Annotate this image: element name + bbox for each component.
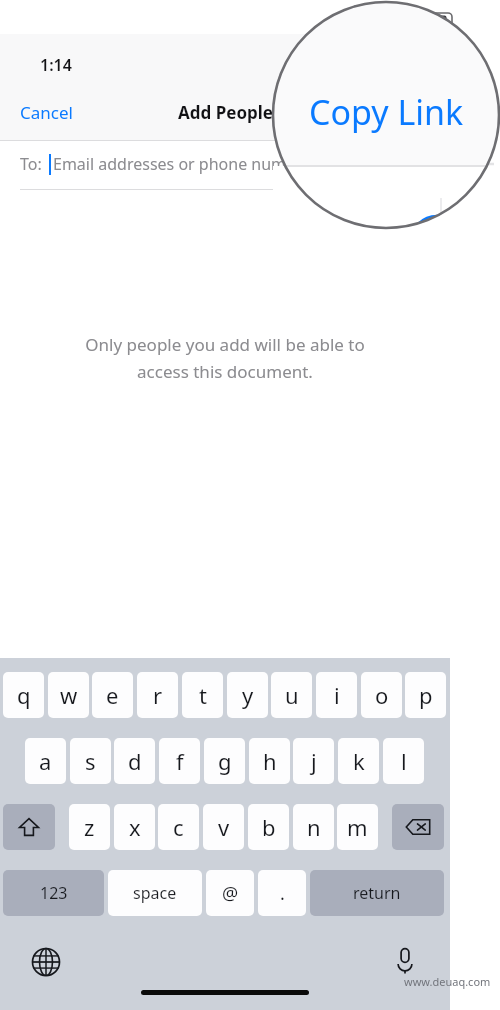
button[interactable]: v <box>203 804 244 850</box>
button[interactable]: e <box>92 672 133 718</box>
button[interactable]: c <box>158 804 199 850</box>
button[interactable]: s <box>70 738 111 784</box>
button[interactable]: f <box>159 738 200 784</box>
button[interactable]: x <box>114 804 155 850</box>
other: Change keyboard <box>31 947 61 977</box>
staticText: g <box>218 746 232 776</box>
staticText: www.deuaq.com <box>404 974 491 989</box>
staticText: . <box>280 881 285 906</box>
button[interactable]: a <box>25 738 66 784</box>
button[interactable]: r <box>137 672 178 718</box>
staticText: Copy Link <box>356 101 434 124</box>
staticText: r <box>153 680 163 710</box>
staticText: return <box>353 882 401 904</box>
staticText: d <box>128 746 142 776</box>
button[interactable]: h <box>249 738 290 784</box>
staticText: c <box>173 812 184 842</box>
staticText: n <box>307 812 321 842</box>
button[interactable]: u <box>271 672 312 718</box>
staticText: Only people you add will be able to acce… <box>0 333 450 383</box>
button[interactable]: o <box>361 672 402 718</box>
other: Dictate <box>390 945 420 975</box>
button[interactable]: Shift <box>3 804 55 850</box>
button[interactable]: Cancel <box>0 89 93 136</box>
button[interactable]: w <box>48 672 89 718</box>
staticText: o <box>375 680 389 710</box>
staticText: 1:14 <box>40 54 72 76</box>
staticText: u <box>285 680 299 710</box>
staticText: l <box>401 746 407 776</box>
staticText: y <box>242 680 254 710</box>
button[interactable]: . <box>258 870 306 916</box>
staticText: f <box>176 746 184 776</box>
staticText: a <box>39 746 52 776</box>
button[interactable]: @ <box>206 870 254 916</box>
button[interactable]: n <box>293 804 334 850</box>
button[interactable]: 123 <box>3 870 104 916</box>
staticText: Cancel <box>20 101 73 124</box>
staticText: w <box>60 680 78 710</box>
staticText: t <box>199 680 207 710</box>
button[interactable]: l <box>383 738 424 784</box>
button[interactable]: space <box>108 870 202 916</box>
staticText: @ <box>222 881 239 906</box>
staticText: space <box>133 882 177 904</box>
staticText: 123 <box>40 882 68 904</box>
staticText: Email addresses or phone numbers <box>53 153 320 175</box>
button[interactable]: g <box>204 738 245 784</box>
staticText: i <box>334 680 340 710</box>
staticText: x <box>129 812 141 842</box>
staticText: q <box>17 680 31 710</box>
staticText: Copy Link <box>309 89 464 135</box>
button[interactable]: p <box>405 672 446 718</box>
button[interactable]: q <box>3 672 44 718</box>
button[interactable]: d <box>114 738 155 784</box>
staticText: k <box>353 746 365 776</box>
staticText: j <box>311 746 317 776</box>
staticText: z <box>84 812 95 842</box>
button[interactable]: t <box>182 672 223 718</box>
staticText: Add People <box>178 101 273 124</box>
button[interactable]: z <box>69 804 110 850</box>
button[interactable]: b <box>248 804 289 850</box>
staticText: e <box>106 680 119 710</box>
button[interactable]: Copy Link <box>340 89 450 136</box>
button[interactable]: return <box>310 870 444 916</box>
staticText: b <box>262 812 276 842</box>
staticText: h <box>263 746 277 776</box>
button[interactable]: i <box>316 672 357 718</box>
button[interactable]: Backspace <box>392 804 444 850</box>
staticText: To: <box>20 153 42 175</box>
button[interactable]: y <box>227 672 268 718</box>
button[interactable]: j <box>293 738 334 784</box>
staticText: m <box>347 812 368 842</box>
staticText: s <box>85 746 96 776</box>
button[interactable]: m <box>337 804 378 850</box>
staticText: p <box>419 680 433 710</box>
button[interactable]: k <box>338 738 379 784</box>
staticText: v <box>218 812 230 842</box>
